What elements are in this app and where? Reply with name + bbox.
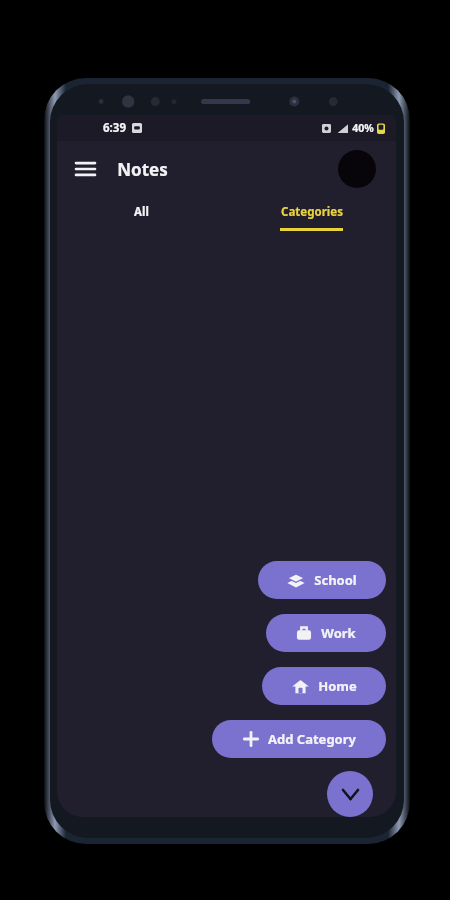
staticText: Notes bbox=[117, 158, 168, 181]
button[interactable]: Categories bbox=[226, 197, 396, 239]
staticText: Work bbox=[321, 624, 356, 642]
staticText: Categories bbox=[281, 204, 343, 220]
staticText: All bbox=[134, 204, 149, 220]
staticText: Home bbox=[318, 677, 357, 695]
button[interactable]: Account avatar bbox=[338, 150, 376, 188]
button[interactable]: Home bbox=[262, 667, 386, 705]
staticText: 6:39 bbox=[103, 120, 126, 136]
staticText: School bbox=[314, 571, 357, 589]
staticText: Add Category bbox=[268, 730, 356, 748]
button[interactable]: Add Category bbox=[212, 720, 386, 758]
button[interactable]: School bbox=[258, 561, 386, 599]
button[interactable]: Scroll down bbox=[327, 771, 373, 817]
button[interactable]: Open navigation menu bbox=[65, 149, 105, 189]
button[interactable]: All bbox=[57, 197, 226, 239]
button[interactable]: Work bbox=[266, 614, 386, 652]
staticText: 40% bbox=[352, 121, 374, 135]
